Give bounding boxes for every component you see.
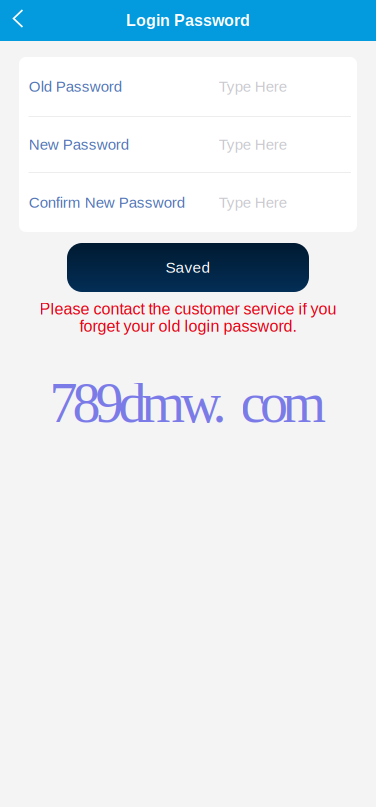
staticText: Confirm New Password: [29, 194, 185, 211]
staticText: com: [240, 372, 326, 434]
staticText: 789dmw.: [49, 372, 226, 434]
staticText: Login Password: [126, 12, 250, 29]
staticText: New Password: [29, 136, 129, 153]
staticText: Type Here: [219, 136, 287, 153]
staticText: Old Password: [29, 78, 122, 95]
staticText: Please contact the customer service if y…: [39, 300, 336, 318]
staticText: Saved: [165, 259, 210, 276]
staticText: Type Here: [219, 78, 287, 95]
staticText: Type Here: [219, 194, 287, 211]
button[interactable]: Saved: [67, 243, 309, 292]
button[interactable]: Back: [0, 0, 36, 41]
staticText: forget your old login password.: [79, 317, 296, 335]
